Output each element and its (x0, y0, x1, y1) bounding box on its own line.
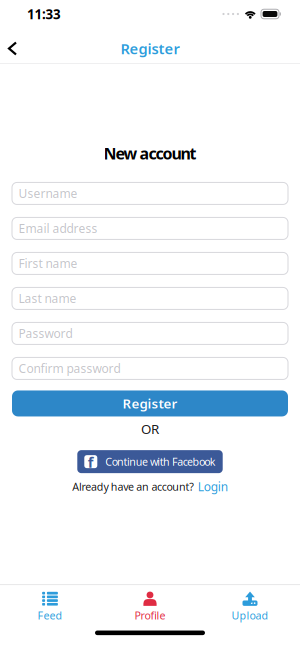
staticText: Password (18, 325, 72, 341)
staticText: Login (198, 479, 228, 495)
button[interactable]: Register (12, 390, 288, 416)
staticText: Email address (18, 220, 97, 236)
staticText: 11:33 (27, 5, 61, 23)
staticText: f (88, 452, 94, 472)
staticText: Username (18, 185, 77, 201)
button[interactable]: Feed (0, 585, 100, 623)
staticText: Confirm password (18, 360, 120, 376)
staticText: Profile (134, 608, 165, 623)
button[interactable]: f (77, 450, 223, 473)
button[interactable]: Profile (100, 585, 200, 623)
staticText: Continue with Facebook (105, 455, 216, 469)
staticText: Upload (231, 608, 268, 623)
staticText: Register (120, 39, 179, 58)
button[interactable]: Upload (200, 585, 300, 623)
button[interactable]: Back (0, 30, 26, 60)
staticText: Already have an account? (72, 479, 194, 494)
staticText: New account (103, 143, 196, 164)
staticText: Last name (18, 290, 76, 306)
staticText: Feed (37, 608, 62, 623)
staticText: Register (122, 395, 177, 412)
staticText: OR (141, 420, 159, 438)
button[interactable]: Login (198, 479, 228, 495)
staticText: First name (18, 255, 77, 271)
